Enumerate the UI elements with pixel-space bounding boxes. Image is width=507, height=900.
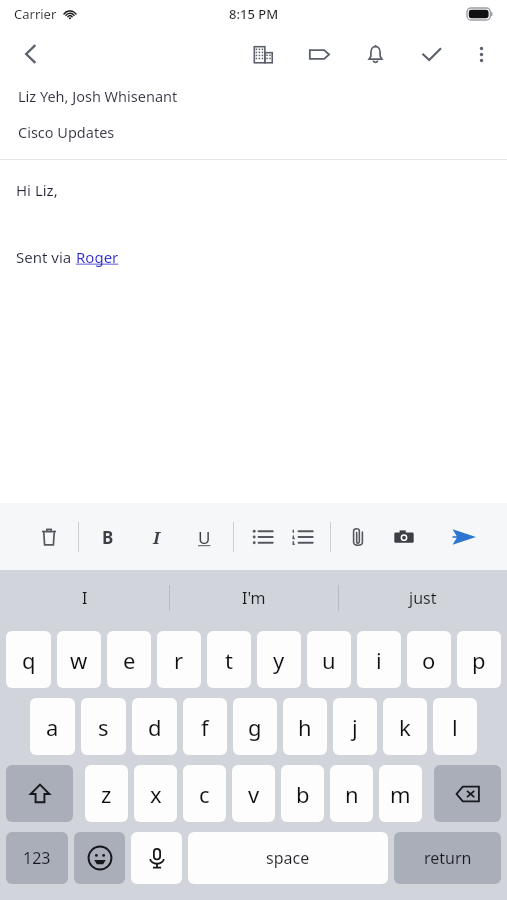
button[interactable]: space [188, 832, 388, 884]
button[interactable]: Italic [137, 518, 175, 556]
staticText: m [390, 779, 411, 809]
button[interactable]: I [0, 570, 169, 625]
button[interactable]: Backspace [434, 765, 501, 822]
staticText: f [201, 712, 209, 742]
staticText: Hi Liz, [16, 180, 58, 200]
staticText: v [248, 779, 260, 809]
staticText: U [198, 526, 211, 549]
button[interactable]: Notifications [353, 32, 397, 76]
button[interactable]: m [379, 765, 422, 822]
button[interactable]: Bold [89, 518, 127, 556]
button[interactable]: return [394, 832, 501, 884]
button[interactable]: d [132, 698, 177, 755]
button[interactable]: s [81, 698, 126, 755]
staticText: return [424, 847, 472, 869]
staticText: s [98, 712, 109, 742]
staticText: h [298, 712, 312, 742]
button[interactable]: Delete [30, 518, 68, 556]
button[interactable]: I'm [170, 570, 338, 625]
staticText: z [101, 779, 112, 809]
button[interactable]: u [307, 631, 351, 688]
staticText: 123 [23, 847, 51, 869]
staticText: b [296, 779, 310, 809]
staticText: c [199, 779, 210, 809]
staticText: 8:15 PM [229, 5, 279, 23]
staticText: r [174, 645, 184, 675]
button[interactable]: g [233, 698, 277, 755]
button[interactable]: y [257, 631, 301, 688]
button[interactable]: Send [443, 516, 485, 558]
staticText: p [472, 645, 486, 675]
button[interactable]: x [134, 765, 177, 822]
button[interactable]: j [333, 698, 377, 755]
staticText: Liz Yeh, Josh Whisenant [18, 86, 178, 106]
staticText: d [148, 712, 162, 742]
staticText: i [376, 645, 382, 675]
staticText: I'm [242, 587, 266, 609]
button[interactable]: Company [241, 32, 285, 76]
button[interactable]: Roger [76, 247, 119, 267]
button[interactable]: More options [459, 32, 503, 76]
button[interactable]: i [357, 631, 401, 688]
button[interactable]: h [283, 698, 327, 755]
button[interactable]: l [433, 698, 477, 755]
staticText: w [70, 645, 88, 675]
staticText: k [399, 712, 411, 742]
staticText: q [22, 645, 36, 675]
button[interactable]: p [457, 631, 501, 688]
button[interactable]: t [207, 631, 251, 688]
staticText: x [150, 779, 162, 809]
staticText: n [345, 779, 359, 809]
button[interactable]: e [107, 631, 151, 688]
button[interactable]: Numbered list [284, 518, 322, 556]
staticText: just [409, 587, 437, 609]
button[interactable]: b [281, 765, 324, 822]
button[interactable]: z [85, 765, 128, 822]
button[interactable]: Done [409, 32, 453, 76]
button[interactable]: just [339, 570, 507, 625]
staticText: I [153, 526, 160, 549]
staticText: l [452, 712, 458, 742]
staticText: B [102, 526, 114, 549]
button[interactable]: o [407, 631, 451, 688]
staticText: u [322, 645, 336, 675]
button[interactable]: 123 [6, 832, 68, 884]
button[interactable]: n [330, 765, 373, 822]
button[interactable]: r [157, 631, 201, 688]
staticText: j [352, 712, 358, 742]
button[interactable]: Dictate [131, 832, 182, 884]
button[interactable]: Label [297, 32, 341, 76]
button[interactable]: Emoji [74, 832, 125, 884]
staticText: Sent via [16, 247, 76, 267]
button[interactable]: Bulleted list [244, 518, 282, 556]
staticText: space [266, 847, 310, 869]
button[interactable]: Underline [185, 518, 223, 556]
staticText: t [225, 645, 233, 675]
staticText: I [82, 587, 88, 609]
staticText: y [273, 645, 285, 675]
button[interactable]: q [6, 631, 51, 688]
staticText: a [46, 712, 59, 742]
button[interactable]: Attach file [339, 518, 377, 556]
button[interactable]: c [183, 765, 226, 822]
staticText: o [422, 645, 436, 675]
button[interactable]: v [232, 765, 275, 822]
staticText: Cisco Updates [18, 122, 115, 142]
staticText: g [248, 712, 262, 742]
button[interactable]: f [183, 698, 227, 755]
button[interactable]: k [383, 698, 427, 755]
staticText: Roger [76, 247, 119, 267]
staticText: e [123, 645, 136, 675]
staticText: Carrier [14, 5, 57, 23]
button[interactable]: Shift [6, 765, 73, 822]
button[interactable]: a [30, 698, 75, 755]
button[interactable]: Back [8, 31, 54, 77]
button[interactable]: w [57, 631, 101, 688]
button[interactable]: Camera [385, 518, 423, 556]
